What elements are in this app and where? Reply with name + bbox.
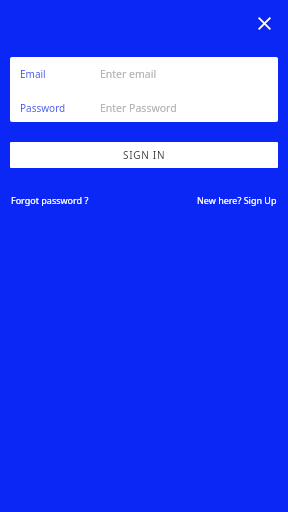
staticText: Enter email	[100, 67, 157, 81]
staticText: Enter Password	[100, 101, 177, 115]
button[interactable]: Password	[10, 95, 278, 121]
button[interactable]: Close	[248, 7, 280, 39]
staticText: Password	[20, 101, 66, 115]
staticText: SIGN IN	[123, 148, 166, 162]
button[interactable]: Email	[10, 61, 278, 87]
button[interactable]: Forgot password ?	[11, 192, 89, 208]
staticText: Email	[20, 67, 46, 81]
staticText: Forgot password ?	[11, 194, 89, 206]
button[interactable]: New here? Sign Up	[197, 192, 277, 208]
staticText: New here? Sign Up	[197, 194, 277, 206]
button[interactable]: SIGN IN	[10, 142, 278, 168]
